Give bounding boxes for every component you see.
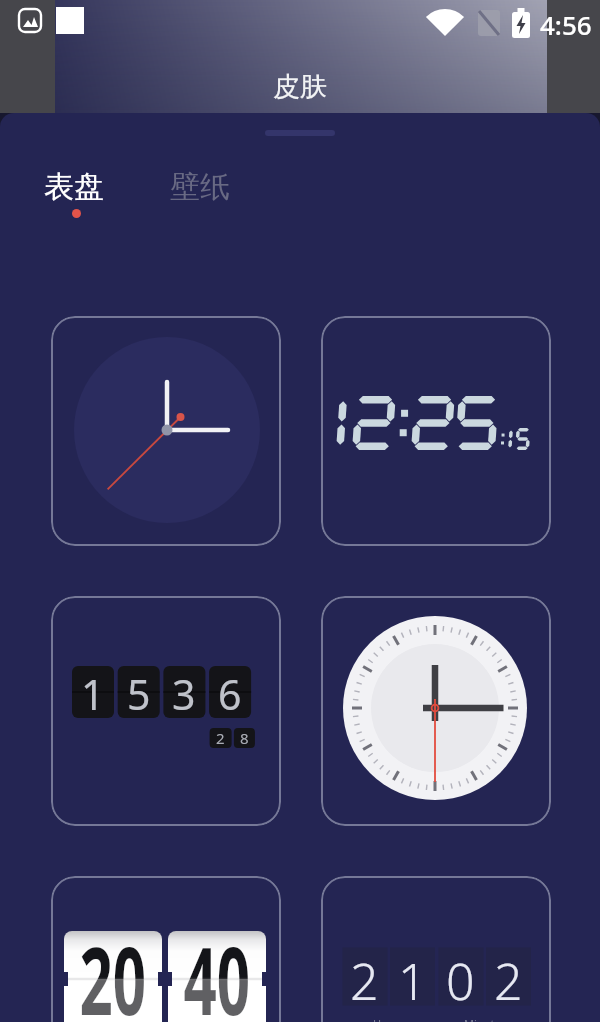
staticText: 5 [127, 666, 151, 718]
staticText: 0 [446, 947, 475, 1005]
button[interactable]: 表盘 [44, 168, 104, 206]
staticText: 2 [216, 728, 225, 748]
staticText: Minutes [464, 1016, 506, 1022]
staticText: 皮肤 [273, 70, 327, 104]
staticText: 8 [240, 728, 249, 748]
staticText: 6 [218, 666, 242, 718]
staticText: 3 [172, 666, 196, 718]
button[interactable] [51, 316, 281, 546]
staticText: 1 [398, 947, 427, 1005]
staticText: 2 [350, 947, 379, 1005]
staticText: 表盘 [44, 168, 104, 206]
button[interactable]: 2 [321, 876, 551, 1022]
staticText: 壁纸 [170, 168, 230, 206]
button[interactable] [321, 596, 551, 826]
staticText: 4:56 [540, 7, 592, 42]
staticText: Hours [373, 1016, 405, 1022]
staticText: 1 [81, 666, 105, 718]
staticText: 40 [183, 915, 250, 1022]
staticText: 20 [79, 915, 146, 1022]
button[interactable]: 1 [51, 596, 281, 826]
button[interactable] [321, 316, 551, 546]
button[interactable]: 20 [51, 876, 281, 1022]
button[interactable]: 壁纸 [170, 168, 230, 206]
staticText: 2 [494, 947, 523, 1005]
